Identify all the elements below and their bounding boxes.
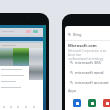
button[interactable]: microsoft 365 — [70, 59, 110, 65]
button[interactable]: Tab — [22, 103, 30, 110]
staticText: microsoft account — [75, 80, 109, 85]
button[interactable]: Search — [68, 31, 110, 38]
button[interactable]: App — [73, 99, 81, 107]
staticText: Bing — [73, 32, 82, 37]
button[interactable]: Tab — [0, 103, 7, 110]
staticText: Microsoft Corporation is an American mul… — [68, 49, 110, 61]
button[interactable]: microsoft word — [70, 69, 110, 75]
staticText: Microsoft.com — [68, 43, 97, 48]
staticText: microsoft word — [75, 70, 104, 75]
staticText: microsoft 365 — [75, 60, 101, 65]
staticText: Apps — [68, 88, 77, 93]
button[interactable]: App — [103, 99, 110, 107]
button[interactable]: Tab — [14, 103, 22, 110]
button[interactable]: App — [88, 99, 96, 107]
button[interactable]: microsoft account — [70, 79, 110, 85]
button[interactable]: Tab — [7, 103, 14, 110]
button[interactable]: Tab — [30, 103, 38, 110]
